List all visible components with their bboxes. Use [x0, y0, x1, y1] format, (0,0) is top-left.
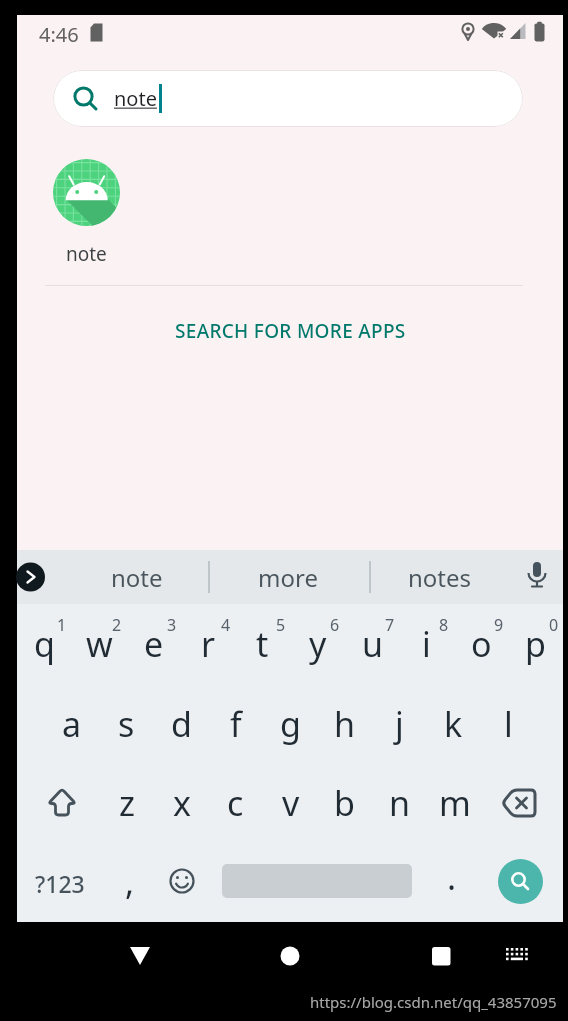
button[interactable]: s: [99, 684, 154, 764]
button[interactable]: a: [44, 684, 99, 764]
staticText: j: [395, 701, 404, 747]
staticText: r: [201, 621, 216, 667]
staticText: 8: [439, 614, 449, 636]
button[interactable]: n: [372, 763, 427, 843]
staticText: p: [525, 621, 546, 667]
button[interactable]: h: [317, 684, 372, 764]
button[interactable]: [522, 559, 552, 595]
button[interactable]: y: [290, 604, 345, 684]
button[interactable]: notes: [380, 550, 500, 604]
button[interactable]: note: [77, 550, 197, 604]
staticText: https://blog.csdn.net/qq_43857095: [310, 992, 557, 1012]
button[interactable]: [421, 936, 461, 976]
button[interactable]: d: [154, 684, 209, 764]
staticText: 7: [385, 614, 395, 636]
button[interactable]: o: [454, 604, 509, 684]
staticText: w: [86, 621, 113, 667]
staticText: 6: [330, 614, 340, 636]
button[interactable]: ?123: [30, 843, 90, 923]
staticText: o: [471, 621, 492, 667]
button[interactable]: c: [208, 763, 263, 843]
staticText: a: [62, 701, 82, 747]
staticText: q: [34, 621, 55, 667]
staticText: e: [144, 621, 164, 667]
button[interactable]: [493, 776, 547, 830]
button[interactable]: k: [426, 684, 481, 764]
button[interactable]: e: [126, 604, 181, 684]
button[interactable]: v: [263, 763, 318, 843]
staticText: y: [309, 621, 327, 667]
staticText: g: [280, 701, 301, 747]
staticText: note: [66, 241, 107, 265]
button[interactable]: x: [154, 763, 209, 843]
staticText: v: [282, 780, 300, 826]
staticText: s: [118, 701, 135, 747]
staticText: 1: [57, 614, 67, 636]
staticText: 2: [112, 614, 122, 636]
button[interactable]: [35, 776, 89, 830]
button[interactable]: t: [235, 604, 290, 684]
staticText: f: [230, 701, 242, 747]
staticText: k: [444, 701, 463, 747]
button[interactable]: l: [481, 684, 536, 764]
button[interactable]: [270, 936, 310, 976]
staticText: h: [334, 701, 356, 747]
button[interactable]: [155, 854, 209, 908]
staticText: 4: [221, 614, 231, 636]
button[interactable]: i: [399, 604, 454, 684]
staticText: notes: [408, 561, 472, 594]
staticText: SEARCH FOR MORE APPS: [175, 318, 406, 344]
staticText: ,: [125, 859, 135, 905]
button[interactable]: r: [181, 604, 236, 684]
staticText: more: [258, 561, 318, 594]
button[interactable]: m: [427, 763, 482, 843]
button[interactable]: SEARCH FOR MORE APPS: [17, 316, 563, 346]
button[interactable]: p: [508, 604, 563, 684]
button[interactable]: f: [208, 684, 263, 764]
button[interactable]: b: [317, 763, 372, 843]
staticText: u: [362, 621, 384, 667]
staticText: t: [256, 621, 269, 667]
staticText: 4:46: [39, 21, 79, 43]
button[interactable]: w: [72, 604, 127, 684]
staticText: d: [171, 701, 192, 747]
staticText: 0: [549, 614, 559, 636]
staticText: i: [422, 621, 431, 667]
button[interactable]: u: [345, 604, 400, 684]
staticText: m: [439, 780, 471, 826]
button[interactable]: [53, 159, 120, 226]
button[interactable]: [498, 859, 543, 904]
staticText: 3: [167, 614, 177, 636]
staticText: 9: [494, 614, 504, 636]
button[interactable]: q: [17, 604, 72, 684]
button[interactable]: j: [372, 684, 427, 764]
staticText: note: [111, 561, 163, 594]
staticText: note: [114, 85, 157, 112]
button[interactable]: note: [53, 70, 523, 127]
button[interactable]: [501, 938, 535, 974]
button[interactable]: [120, 936, 160, 976]
button[interactable]: .: [425, 837, 479, 917]
staticText: b: [334, 780, 355, 826]
staticText: .: [447, 854, 457, 900]
button[interactable]: g: [263, 684, 318, 764]
button[interactable]: [17, 561, 49, 593]
staticText: ?123: [35, 868, 85, 899]
staticText: c: [227, 780, 244, 826]
staticText: 5: [276, 614, 286, 636]
staticText: n: [389, 780, 411, 826]
staticText: x: [173, 780, 191, 826]
staticText: z: [119, 780, 135, 826]
staticText: l: [504, 701, 513, 747]
button[interactable]: z: [99, 763, 154, 843]
button[interactable]: ,: [103, 842, 157, 922]
button[interactable]: more: [228, 550, 348, 604]
